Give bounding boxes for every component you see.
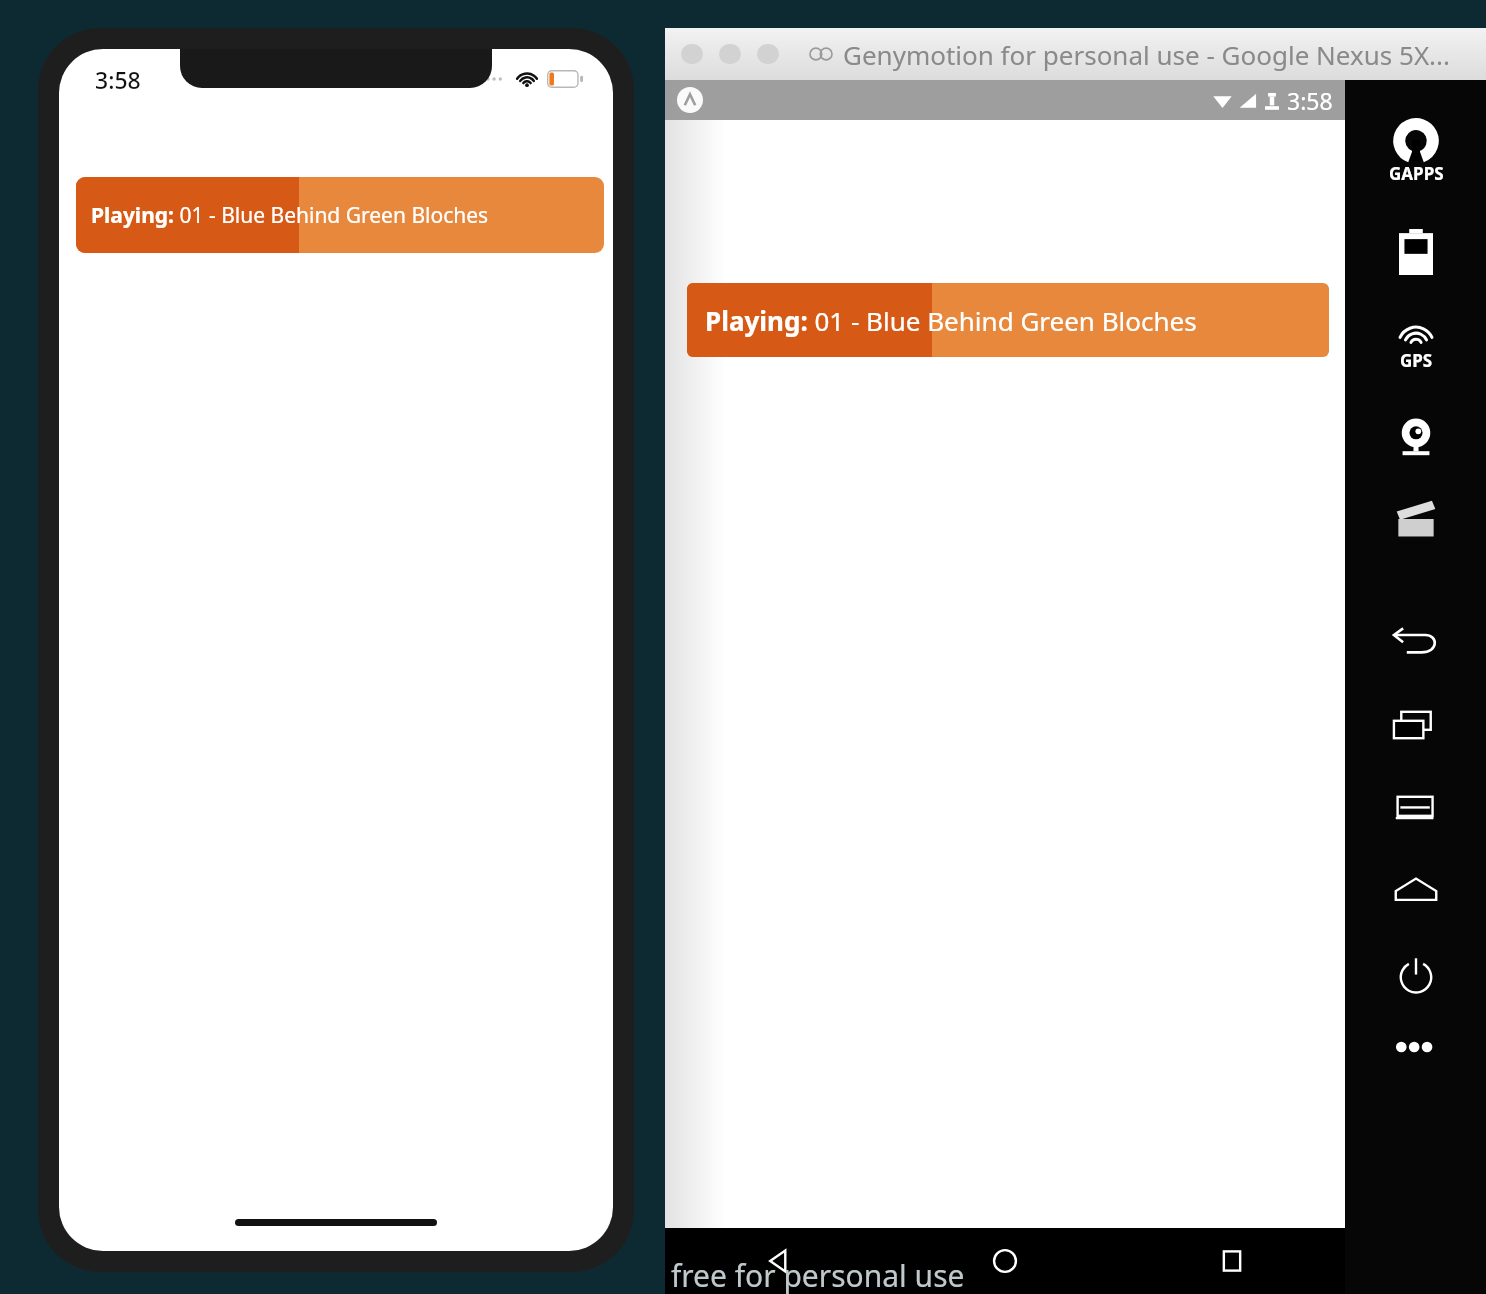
button[interactable]: Camera [1361, 416, 1471, 456]
button[interactable]: GAPPS [1361, 120, 1471, 185]
button[interactable]: Power [1361, 956, 1471, 994]
button[interactable]: Screen record [1361, 500, 1471, 538]
button[interactable]: Menu [1361, 794, 1471, 822]
staticText: Genymotion for personal use - Google Nex… [843, 37, 1451, 72]
button[interactable]: Recents [1361, 710, 1471, 740]
staticText: Playing: 01 - Blue Behind Green Bloches [91, 201, 489, 230]
button[interactable]: Window control [757, 44, 779, 64]
staticText: Playing: 01 - Blue Behind Green Bloches [705, 303, 1197, 338]
staticText: 3:58 [1287, 85, 1333, 116]
button[interactable]: Back [665, 1228, 891, 1294]
button[interactable]: Recents [1118, 1228, 1345, 1294]
button[interactable]: Playing: 01 - Blue Behind Green Bloches [687, 283, 1329, 357]
staticText: GAPPS [1389, 162, 1444, 185]
button[interactable]: Back [1361, 626, 1471, 656]
button[interactable]: Home [891, 1228, 1118, 1294]
button[interactable]: Home [1361, 876, 1471, 902]
staticText: 3:58 [95, 64, 141, 95]
button[interactable]: Window control [681, 44, 703, 64]
button[interactable]: Playing: 01 - Blue Behind Green Bloches [76, 177, 604, 253]
button[interactable]: More [1361, 1040, 1471, 1054]
button[interactable]: Battery [1361, 229, 1471, 275]
staticText: GPS [1400, 349, 1433, 372]
staticText: free for personal use [671, 1255, 965, 1294]
button[interactable]: Window control [719, 44, 741, 64]
button[interactable]: GPS [1361, 319, 1471, 372]
